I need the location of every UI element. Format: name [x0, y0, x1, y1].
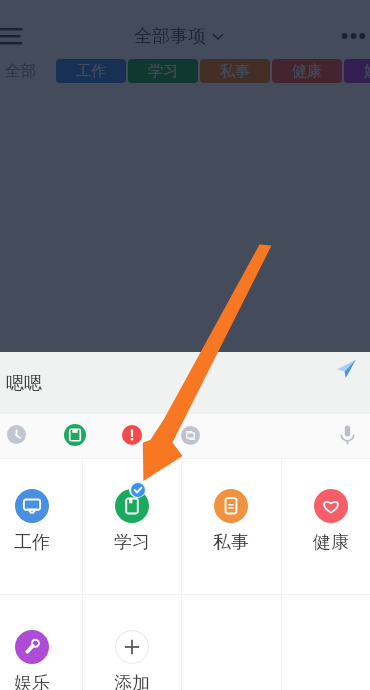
- button[interactable]: Voice input: [331, 418, 363, 450]
- button[interactable]: 健康: [286, 459, 370, 549]
- staticText: 娱乐: [0, 672, 77, 690]
- button[interactable]: Menu: [0, 21, 28, 51]
- staticText: 全部事项: [134, 25, 206, 48]
- staticText: 学习: [148, 62, 178, 81]
- staticText: 学习: [87, 531, 177, 554]
- staticText: 娱乐: [364, 62, 370, 81]
- button[interactable]: 私事: [186, 459, 276, 549]
- staticText: 工作: [0, 531, 77, 554]
- staticText: 健康: [292, 62, 322, 81]
- button[interactable]: 工作: [0, 459, 77, 549]
- staticText: 添加: [87, 672, 177, 690]
- button[interactable]: More options: [336, 21, 370, 51]
- button[interactable]: 工作: [56, 59, 126, 83]
- button[interactable]: 学习: [87, 459, 177, 549]
- button[interactable]: 娱乐: [344, 59, 370, 83]
- button[interactable]: 娱乐: [0, 600, 77, 690]
- button[interactable]: Save: [64, 424, 86, 446]
- button[interactable]: 健康: [272, 59, 342, 83]
- button[interactable]: Priority: [122, 425, 142, 445]
- button[interactable]: Reminder: [7, 425, 26, 444]
- staticText: 私事: [220, 62, 250, 81]
- button[interactable]: 私事: [200, 59, 270, 83]
- button[interactable]: Repeat: [181, 426, 200, 445]
- staticText: 工作: [76, 62, 106, 81]
- button[interactable]: 学习: [128, 59, 198, 83]
- button[interactable]: Add category: [87, 600, 177, 690]
- button[interactable]: 全部: [0, 59, 40, 83]
- button[interactable]: Send: [330, 352, 362, 384]
- staticText: 私事: [186, 531, 276, 554]
- staticText: 健康: [286, 531, 370, 554]
- button[interactable]: 全部事项: [134, 21, 223, 51]
- staticText: 全部: [5, 61, 36, 81]
- staticText: 嗯嗯: [6, 372, 42, 395]
